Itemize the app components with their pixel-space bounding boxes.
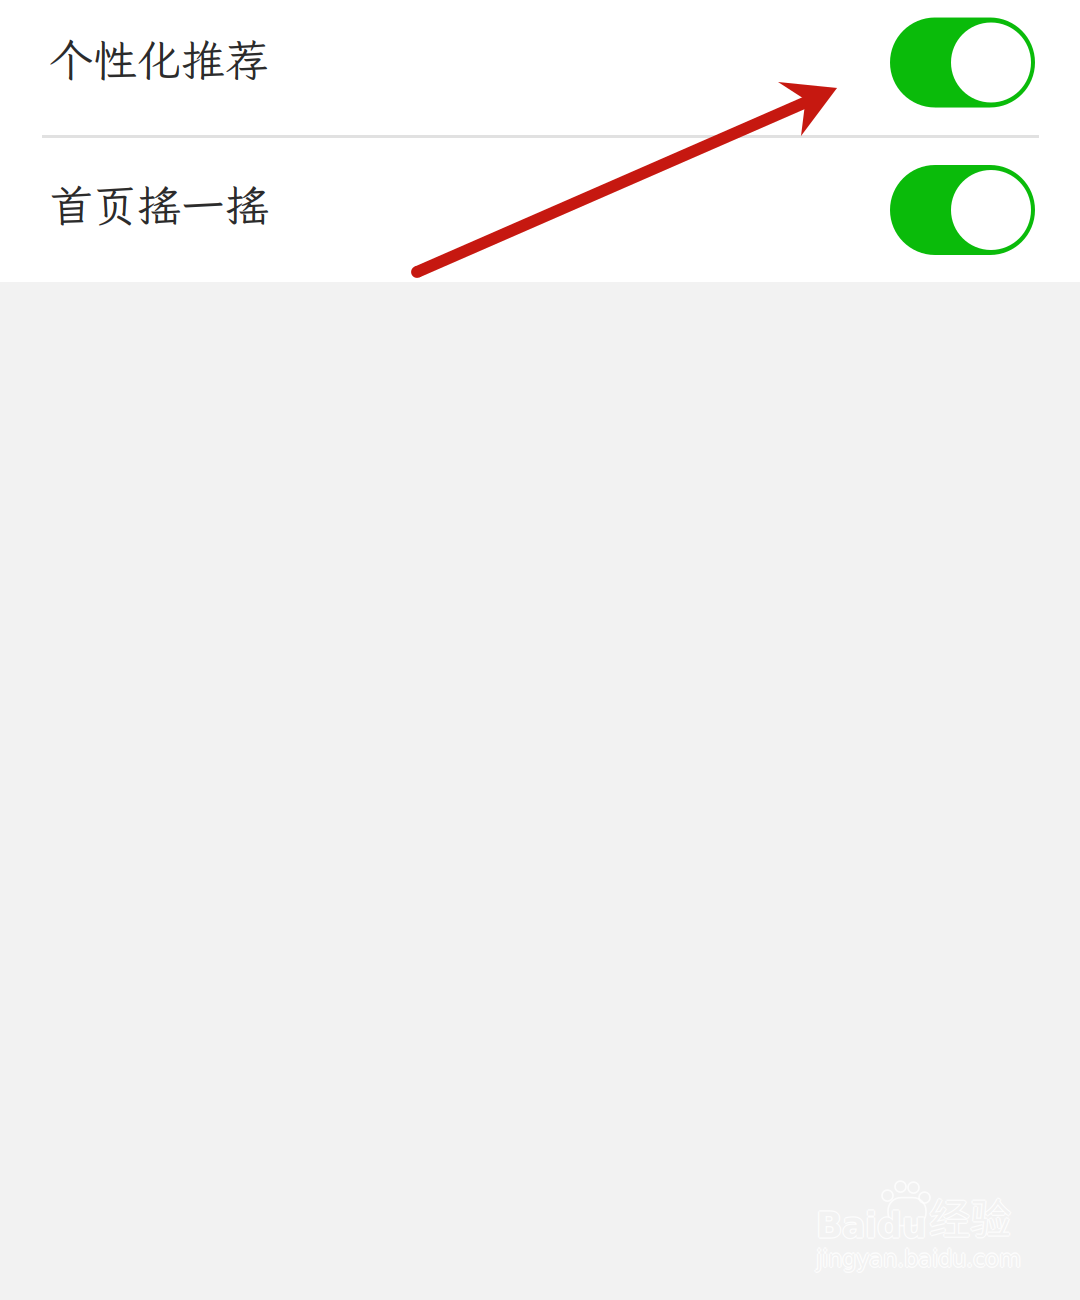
staticText: 经验 [929, 1184, 1011, 1244]
button[interactable]: 首页摇一摇 [0, 138, 1080, 282]
staticText: jingyan.baidu.com [816, 1246, 1021, 1272]
staticText: 经验 [930, 1186, 1012, 1246]
staticText: Baidu [815, 1205, 926, 1246]
staticText: 首页摇一摇 [49, 176, 269, 234]
staticText: jingyan.baidu.com [816, 1247, 1021, 1273]
staticText: 经验 [929, 1187, 1011, 1247]
staticText: 经验 [928, 1186, 1010, 1246]
staticText: jingyan.baidu.com [816, 1244, 1021, 1271]
button[interactable]: 个性化推荐 [0, 0, 1080, 135]
staticText: Baidu [817, 1205, 928, 1246]
staticText: Baidu [816, 1205, 927, 1246]
staticText: 经验 [929, 1186, 1011, 1246]
staticText: Baidu [816, 1204, 927, 1244]
staticText: 个性化推荐 [49, 30, 269, 88]
staticText: Baidu [816, 1207, 927, 1247]
staticText: jingyan.baidu.com [817, 1246, 1022, 1272]
staticText: jingyan.baidu.com [815, 1246, 1020, 1272]
